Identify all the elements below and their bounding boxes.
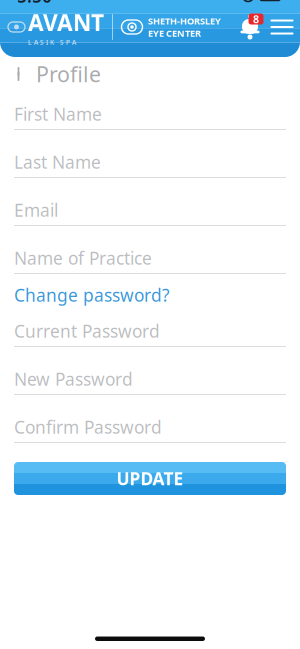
staticText: Confirm Password <box>14 415 162 438</box>
staticText: 8 <box>253 12 259 26</box>
staticText: Profile <box>36 60 101 88</box>
staticText: New Password <box>14 367 133 390</box>
button[interactable]: UPDATE <box>14 462 286 495</box>
staticText: UPDATE <box>116 467 183 490</box>
button[interactable]: Change password? <box>14 274 286 316</box>
staticText: L A S I K S P A <box>28 38 76 46</box>
staticText: 5:50 <box>17 0 52 7</box>
staticText: Change password? <box>14 283 170 306</box>
button[interactable]: Notifications, 8 unread <box>233 12 267 42</box>
button[interactable]: Menu <box>267 14 297 40</box>
staticText: Name of Practice <box>14 246 152 269</box>
button[interactable]: Profile <box>0 57 300 91</box>
staticText: Last Name <box>14 150 101 173</box>
staticText: First Name <box>14 102 102 125</box>
staticText: Email <box>14 198 58 221</box>
staticText: AVANT <box>28 7 104 38</box>
staticText: EYE CENTER <box>148 27 201 39</box>
staticText: SHETH-HORSLEY <box>148 15 221 27</box>
staticText: Current Password <box>14 319 160 342</box>
